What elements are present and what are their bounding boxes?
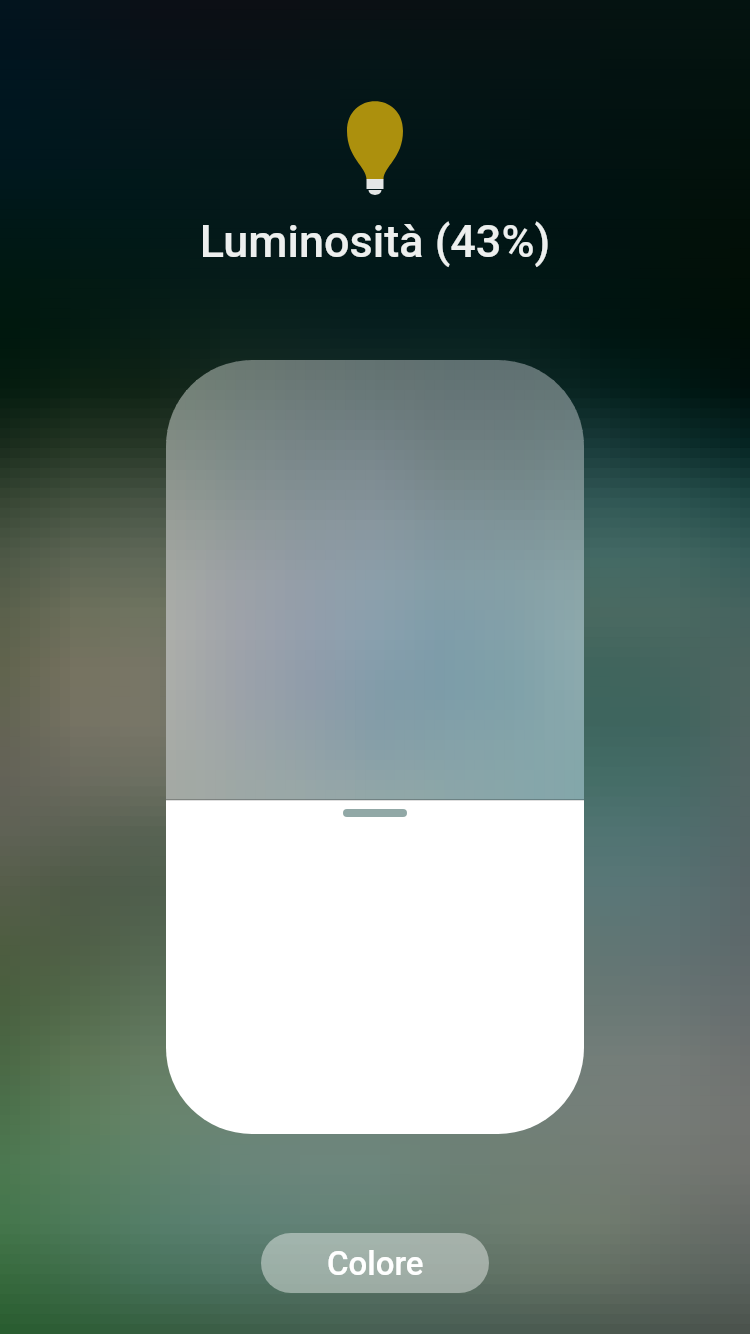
button[interactable]: Brightness slider — [166, 360, 584, 1134]
staticText: Luminosità (43%) — [0, 215, 750, 1334]
staticText: Colore — [327, 1244, 424, 1283]
other: Brightness — [343, 104, 407, 198]
button[interactable]: Colore — [261, 1233, 489, 1293]
